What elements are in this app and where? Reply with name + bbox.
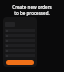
- button[interactable]: [5, 44, 35, 47]
- button[interactable]: [5, 34, 35, 37]
- button[interactable]: [5, 29, 35, 32]
- button[interactable]: [5, 54, 35, 57]
- button[interactable]: Create order: [6, 60, 34, 65]
- button[interactable]: [5, 39, 35, 42]
- staticText: Create new orders: [0, 4, 64, 10]
- button[interactable]: [5, 49, 35, 52]
- staticText: to be processed.: [0, 10, 64, 16]
